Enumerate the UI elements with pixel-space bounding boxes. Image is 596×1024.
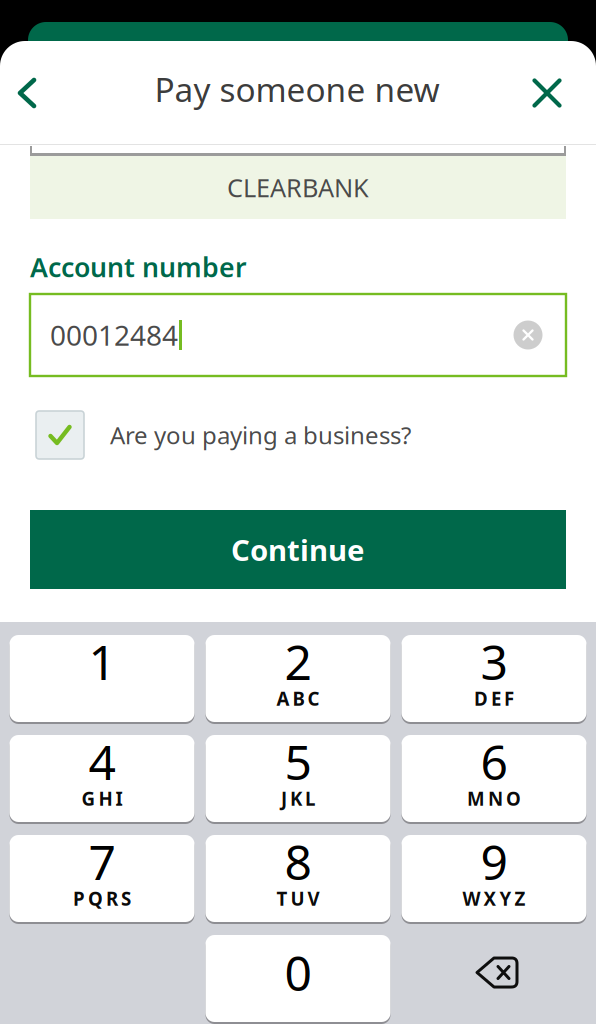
staticText: 8 <box>284 830 311 893</box>
staticText: 4 <box>88 730 115 793</box>
staticText: 0 <box>284 941 311 1004</box>
staticText: Pay someone new <box>154 67 439 111</box>
button[interactable]: 7 <box>9 835 194 922</box>
staticText: CLEARBANK <box>227 171 369 204</box>
staticText: W X Y Z <box>462 886 525 911</box>
button[interactable]: Clear account number <box>502 309 554 361</box>
button[interactable]: 2 <box>205 635 390 722</box>
button[interactable]: 6 <box>401 735 586 822</box>
staticText: 3 <box>480 630 507 693</box>
button[interactable]: 5 <box>205 735 390 822</box>
button[interactable]: 1 <box>9 635 194 722</box>
button[interactable]: Continue <box>30 510 566 589</box>
button[interactable]: 0 <box>205 935 390 1022</box>
staticText: P Q R S <box>73 886 131 911</box>
staticText: T U V <box>276 886 319 911</box>
button[interactable]: 3 <box>401 635 586 722</box>
button[interactable]: 8 <box>205 835 390 922</box>
staticText: M N O <box>467 786 521 811</box>
staticText: J K L <box>281 786 315 811</box>
staticText: Continue <box>231 530 365 569</box>
staticText: Are you paying a business? <box>110 419 411 451</box>
staticText: 2 <box>284 630 311 693</box>
button[interactable]: 4 <box>9 735 194 822</box>
staticText: 6 <box>480 730 507 793</box>
staticText: Account number <box>30 249 247 285</box>
button[interactable]: 9 <box>401 835 586 922</box>
button[interactable]: Close <box>531 62 579 124</box>
button[interactable]: Are you paying a business? <box>36 411 560 459</box>
staticText: 5 <box>284 730 311 793</box>
staticText: G H I <box>81 786 122 811</box>
button[interactable]: Back <box>5 62 49 124</box>
staticText: 9 <box>480 830 507 893</box>
staticText: D E F <box>474 686 514 711</box>
staticText: 7 <box>88 830 115 893</box>
staticText: A B C <box>276 686 319 711</box>
staticText: 00012484 <box>50 316 178 354</box>
button[interactable]: Delete <box>401 935 586 1022</box>
staticText: 1 <box>88 630 115 693</box>
